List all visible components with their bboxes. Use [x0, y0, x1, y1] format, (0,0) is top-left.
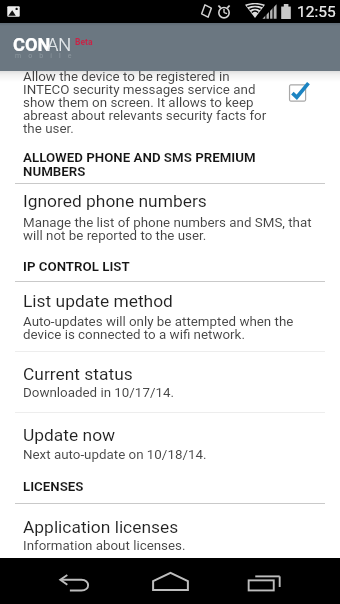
staticText: Downloaded in 10/17/14. — [23, 385, 174, 401]
button[interactable] — [0, 413, 340, 471]
staticText: Information about licenses. — [23, 538, 186, 554]
staticText: m o b i l e — [15, 52, 75, 60]
button[interactable]: Back — [41, 558, 109, 604]
staticText: Next auto-update on 10/18/14. — [23, 447, 207, 463]
staticText: Application licenses — [23, 517, 179, 537]
staticText: Update now — [23, 425, 116, 445]
button[interactable] — [0, 352, 340, 411]
staticText: List update method — [23, 291, 173, 311]
staticText: LICENSES — [23, 479, 84, 495]
staticText: 12:55 — [297, 3, 336, 21]
staticText: Current status — [23, 364, 133, 384]
button[interactable] — [0, 504, 340, 557]
button[interactable] — [0, 184, 340, 246]
staticText: CON — [13, 34, 51, 55]
staticText: Manage the list of phone numbers and SMS… — [23, 215, 312, 244]
button[interactable] — [0, 52, 340, 140]
button[interactable]: Recent apps — [230, 558, 298, 604]
staticText: Auto-updates will only be attempted when… — [23, 314, 294, 343]
staticText: Beta — [75, 37, 93, 47]
staticText: Ignored phone numbers — [23, 191, 207, 211]
staticText: AN — [47, 34, 72, 55]
button[interactable]: Home — [136, 558, 204, 604]
button[interactable] — [0, 282, 340, 350]
staticText: ALLOWED PHONE AND SMS PREMIUM NUMBERS — [23, 150, 256, 180]
staticText: Allow the device to be registered in INT… — [23, 69, 267, 137]
staticText: IP CONTROL LIST — [23, 259, 130, 275]
